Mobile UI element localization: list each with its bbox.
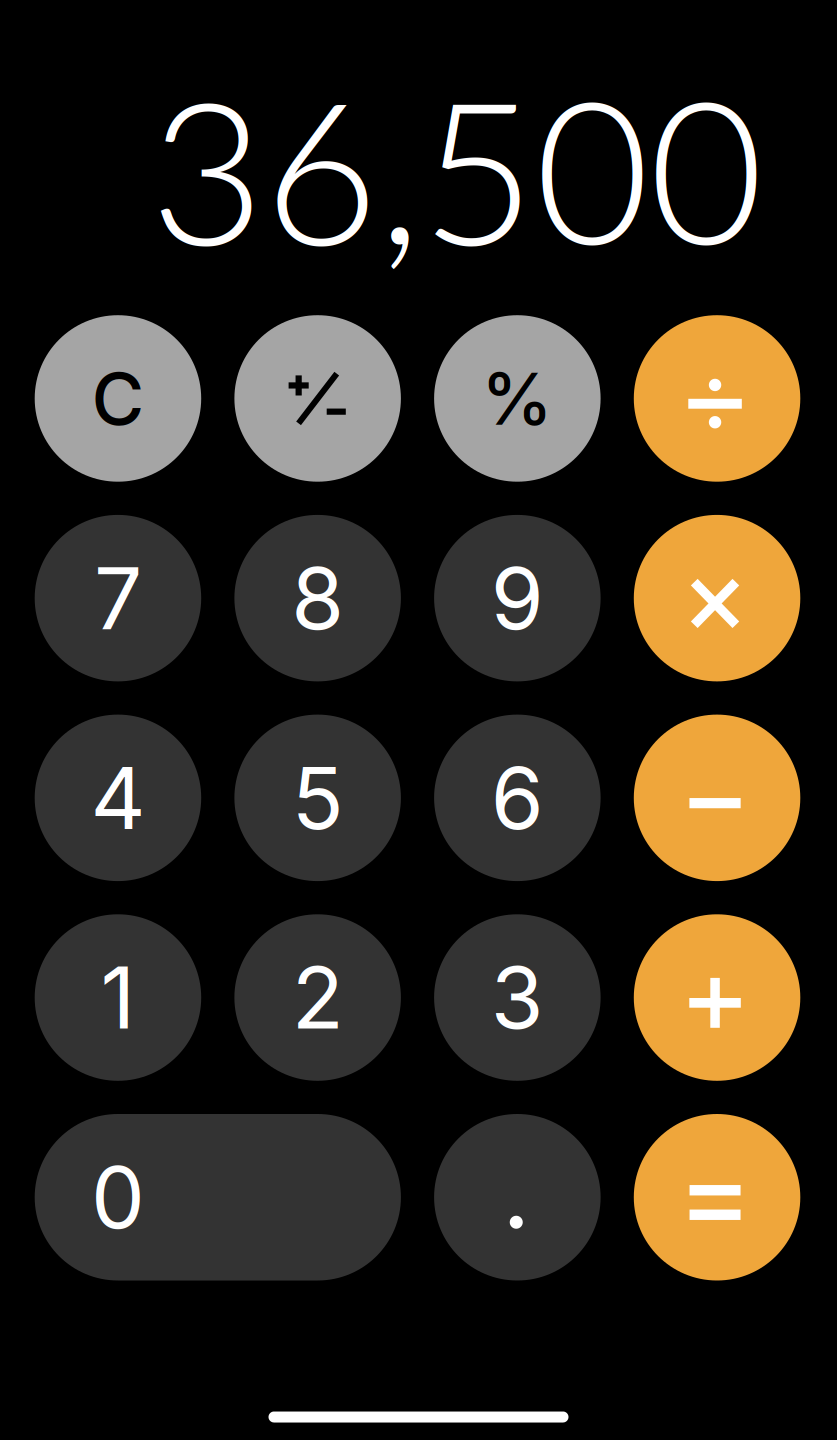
- staticText: 1: [100, 946, 135, 1049]
- staticText: C: [91, 355, 144, 442]
- button[interactable]: %: [434, 315, 601, 482]
- button[interactable]: C: [35, 315, 201, 482]
- staticText: 5: [292, 746, 344, 849]
- staticText: 8: [291, 546, 344, 650]
- button[interactable]: Add: [634, 914, 800, 1081]
- button[interactable]: 4: [35, 715, 201, 881]
- button[interactable]: Decimal point: [434, 1114, 601, 1280]
- staticText: 0: [91, 1146, 145, 1249]
- button[interactable]: 1: [35, 914, 201, 1081]
- staticText: %: [481, 355, 553, 442]
- button[interactable]: 3: [434, 914, 601, 1081]
- staticText: 3: [491, 946, 544, 1049]
- button[interactable]: 2: [234, 914, 401, 1081]
- button[interactable]: 8: [234, 515, 401, 681]
- staticText: 2: [292, 946, 344, 1049]
- button[interactable]: Subtract: [634, 715, 800, 881]
- staticText: 4: [90, 746, 145, 849]
- button[interactable]: Equals: [634, 1114, 800, 1280]
- button[interactable]: Divide: [634, 315, 800, 482]
- button[interactable]: 5: [234, 715, 401, 881]
- staticText: 36,500: [150, 50, 763, 286]
- button[interactable]: 0: [35, 1114, 401, 1280]
- staticText: 6: [491, 746, 544, 849]
- staticText: 9: [491, 546, 544, 650]
- button[interactable]: 9: [434, 515, 601, 681]
- button[interactable]: 6: [434, 715, 601, 881]
- staticText: 7: [94, 546, 142, 650]
- button[interactable]: 7: [35, 515, 201, 681]
- button[interactable]: Toggle sign: [234, 315, 401, 482]
- button[interactable]: Multiply: [634, 515, 800, 681]
